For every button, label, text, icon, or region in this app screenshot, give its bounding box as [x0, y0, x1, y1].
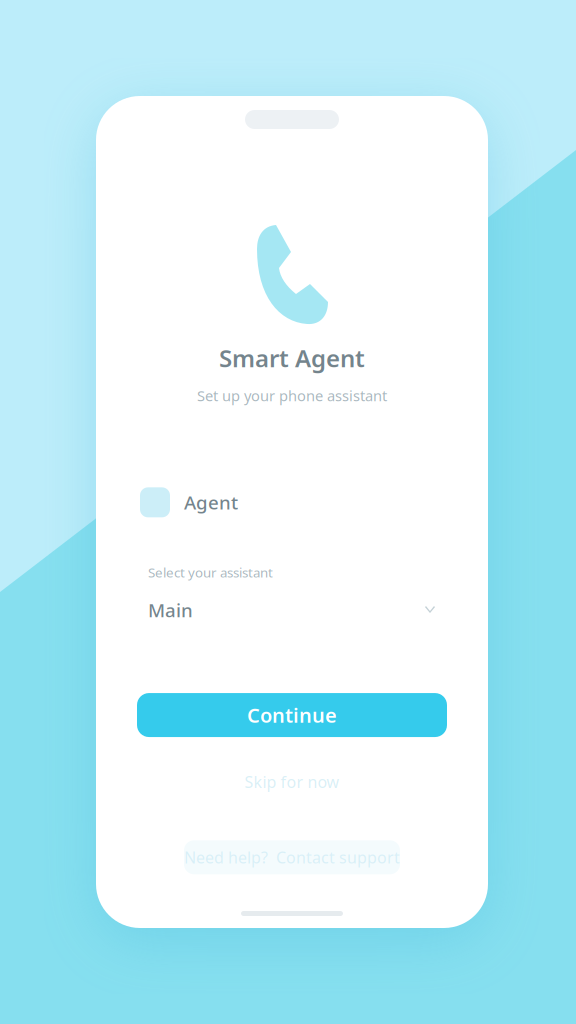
staticText: Agent [184, 490, 238, 515]
staticText: Main [148, 598, 193, 622]
staticText: Skip for now [244, 771, 339, 792]
button[interactable]: Main [96, 599, 488, 621]
staticText: Need help? Contact support [184, 847, 400, 868]
staticText: Set up your phone assistant [197, 386, 387, 405]
button[interactable]: Continue [137, 693, 447, 737]
button[interactable]: Skip for now [244, 771, 339, 792]
staticText: Select your assistant [148, 563, 273, 581]
button[interactable]: Need help? Contact support [184, 840, 400, 874]
staticText: Smart Agent [219, 342, 365, 374]
staticText: Continue [247, 702, 337, 728]
